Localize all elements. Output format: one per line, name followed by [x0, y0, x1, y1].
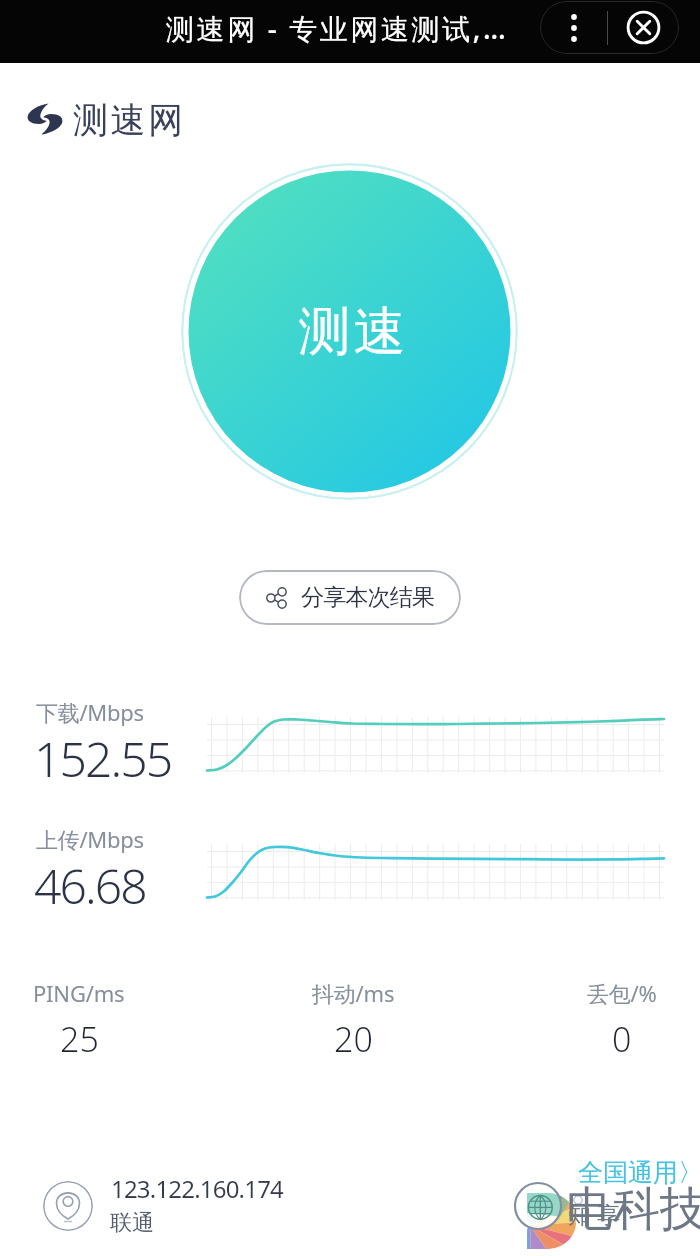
staticText: 测速 [297, 299, 407, 365]
staticText: PING/ms [33, 978, 125, 1008]
staticText: 电科技 [566, 1180, 700, 1239]
button[interactable]: 测速网 [27, 99, 186, 139]
staticText: 抖动/ms [312, 978, 395, 1008]
button[interactable]: More options [540, 1, 607, 54]
staticText: 152.55 [34, 726, 172, 791]
staticText: 全国通用〉 [578, 1157, 700, 1188]
button[interactable]: 测速 [181, 163, 518, 500]
button[interactable]: 丢包/% [587, 978, 657, 1062]
staticText: 联通 [110, 1209, 154, 1237]
staticText: 测速网 - 专业网速测试,… [166, 9, 509, 47]
staticText: 知 享 [568, 1198, 620, 1229]
button[interactable]: 分享本次结果 [239, 570, 461, 625]
staticText: 20 [334, 1016, 373, 1062]
button[interactable]: Close [608, 1, 679, 54]
staticText: 123.122.160.174 [111, 1172, 284, 1205]
staticText: 测速网 [73, 98, 186, 138]
staticText: 丢包/% [587, 978, 657, 1008]
staticText: 分享本次结果 [301, 583, 435, 612]
button[interactable]: Location [43, 1181, 93, 1231]
staticText: 25 [60, 1016, 99, 1062]
button[interactable]: Partner logo [505, 1185, 615, 1256]
staticText: 下载/Mbps [36, 697, 144, 727]
staticText: 0 [612, 1016, 632, 1062]
staticText: 上传/Mbps [36, 824, 144, 854]
staticText: 46.68 [34, 853, 146, 918]
button[interactable]: PING/ms [33, 978, 125, 1062]
button[interactable]: 抖动/ms [312, 978, 395, 1062]
